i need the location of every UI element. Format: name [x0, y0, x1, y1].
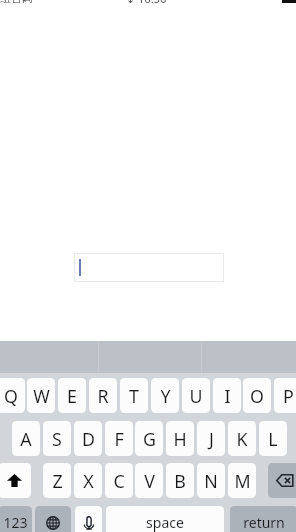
staticText: J [209, 427, 214, 451]
staticText: 组合间 [0, 0, 33, 5]
staticText: R [97, 384, 109, 408]
staticText: C [113, 469, 125, 493]
button[interactable]: Shift [0, 463, 31, 498]
button[interactable]: C [105, 463, 133, 498]
button[interactable]: A [12, 421, 40, 456]
button[interactable]: U [182, 378, 210, 413]
staticText: X [83, 469, 94, 493]
staticText: A [20, 427, 32, 451]
button[interactable]: H [166, 421, 194, 456]
button[interactable]: K [228, 421, 256, 456]
staticText: N [204, 469, 218, 493]
button[interactable]: Dictation [75, 506, 102, 532]
staticText: U [189, 384, 203, 408]
staticText: B [174, 469, 186, 493]
staticText: M [234, 469, 251, 493]
button[interactable]: O [243, 378, 271, 413]
staticText: T [129, 384, 139, 408]
staticText: Y [160, 384, 171, 408]
staticText: I [224, 384, 231, 408]
button[interactable]: return [230, 506, 296, 532]
staticText: F [114, 427, 124, 451]
button[interactable]: T [120, 378, 148, 413]
button[interactable]: D [74, 421, 102, 456]
staticText: H [173, 427, 187, 451]
button[interactable]: E [58, 378, 86, 413]
staticText: G [143, 427, 156, 451]
staticText: Q [4, 384, 18, 408]
button[interactable]: N [197, 463, 225, 498]
staticText: S [52, 427, 62, 451]
button[interactable]: L [259, 421, 287, 456]
staticText: space [146, 513, 184, 532]
staticText: Z [52, 469, 63, 493]
button[interactable]: G [135, 421, 163, 456]
button[interactable]: Q [0, 378, 25, 413]
button[interactable] [74, 253, 224, 282]
staticText: D [82, 427, 95, 451]
staticText: 123 [3, 513, 28, 532]
button[interactable]: S [43, 421, 71, 456]
staticText: V [144, 469, 155, 493]
button[interactable]: V [135, 463, 163, 498]
button[interactable]: Y [151, 378, 179, 413]
button[interactable]: M [228, 463, 256, 498]
staticText: O [250, 384, 264, 408]
staticText: P [283, 384, 294, 408]
button[interactable]: X [74, 463, 102, 498]
button[interactable]: R [89, 378, 117, 413]
staticText: L [268, 427, 278, 451]
button[interactable]: Backspace [268, 463, 296, 498]
button[interactable]: Change keyboard [35, 506, 71, 532]
button[interactable]: W [27, 378, 55, 413]
button[interactable]: B [166, 463, 194, 498]
staticText: ↓ 16:56 [126, 0, 167, 6]
staticText: W [33, 384, 50, 408]
staticText: return [243, 513, 285, 532]
button[interactable]: F [105, 421, 133, 456]
button[interactable]: I [213, 378, 241, 413]
staticText: K [236, 427, 248, 451]
button[interactable]: space [106, 506, 224, 532]
button[interactable]: 123 [0, 506, 32, 532]
staticText: E [67, 384, 77, 408]
button[interactable]: J [197, 421, 225, 456]
button[interactable]: P [274, 378, 296, 413]
button[interactable]: Z [43, 463, 71, 498]
